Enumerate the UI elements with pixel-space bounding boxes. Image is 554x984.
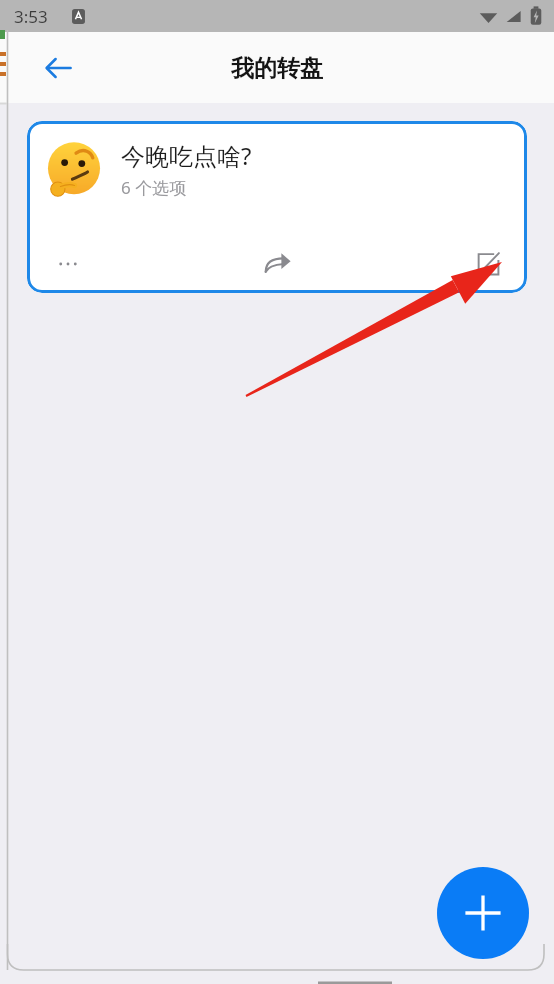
staticText: 我的转盘 [231,54,323,83]
button[interactable]: Edit [461,237,515,291]
staticText: 6 个选项 [121,176,187,199]
staticText: 3:53 [14,5,48,28]
button[interactable]: 今晚吃点啥? [27,121,527,293]
staticText: 今晚吃点啥? [121,139,252,172]
button[interactable]: Share [251,237,305,291]
button[interactable]: Add [437,867,529,959]
button[interactable]: More options [41,237,95,291]
button[interactable]: Back [30,40,86,96]
